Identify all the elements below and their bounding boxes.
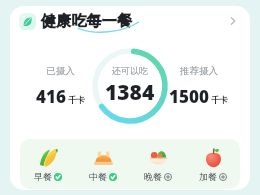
staticText: 已摄入: [46, 65, 75, 77]
button[interactable]: 健康吃每一餐: [10, 6, 250, 36]
staticText: 早餐: [34, 171, 52, 182]
button[interactable]: 加餐: [185, 139, 240, 189]
staticText: 1384: [105, 78, 155, 107]
staticText: 推荐摄入: [180, 65, 218, 77]
staticText: 416: [36, 85, 66, 108]
staticText: 健康吃每一餐: [41, 12, 133, 31]
button[interactable]: More: [224, 12, 242, 30]
staticText: 中餐: [89, 171, 107, 182]
button[interactable]: 晚餐: [130, 139, 185, 189]
button[interactable]: 早餐: [20, 139, 75, 189]
staticText: 加餐: [199, 171, 217, 182]
button[interactable]: 中餐: [75, 139, 130, 189]
staticText: 晚餐: [144, 171, 162, 182]
staticText: 千卡: [211, 95, 228, 106]
staticText: 千卡: [68, 95, 85, 106]
staticText: 还可以吃: [112, 65, 148, 76]
staticText: 1500: [169, 85, 209, 108]
